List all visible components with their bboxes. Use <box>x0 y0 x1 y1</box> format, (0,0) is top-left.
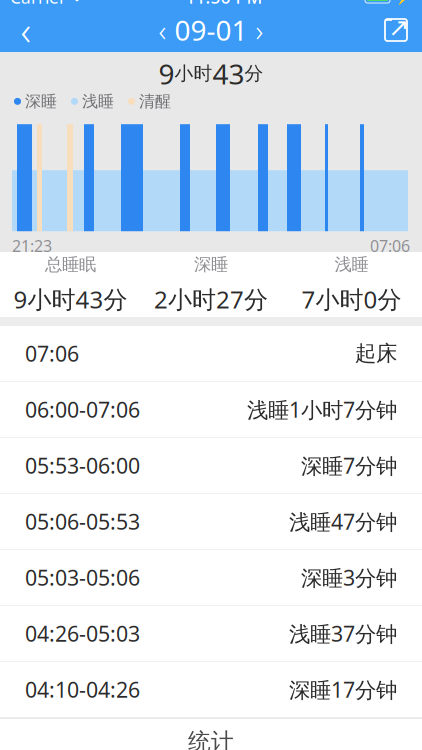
staticText: 统计 <box>188 727 234 750</box>
staticText: 11:56 PM <box>185 0 262 8</box>
staticText: 04:26-05:03 <box>25 619 140 648</box>
staticText: 小时 <box>174 62 212 85</box>
button[interactable]: Share <box>370 8 422 52</box>
staticText: 06:00-07:06 <box>25 395 140 424</box>
staticText: ⚡ <box>395 0 412 5</box>
button[interactable]: 06:00-07:06 <box>0 382 422 438</box>
staticText: 2小时27分 <box>154 283 268 315</box>
staticText: 43 <box>212 55 244 92</box>
button[interactable]: 05:06-05:53 <box>0 494 422 550</box>
staticText: 深睡 <box>194 254 228 275</box>
staticText: 05:53-06:00 <box>25 451 140 480</box>
staticText: Carrier <box>10 0 66 8</box>
staticText: ‹ <box>20 3 31 56</box>
button[interactable]: 04:26-05:03 <box>0 606 422 662</box>
staticText: 清醒 <box>139 91 171 111</box>
button[interactable]: 04:10-04:26 <box>0 662 422 718</box>
staticText: 9 <box>158 55 174 92</box>
staticText: 21:23 <box>12 235 52 256</box>
button[interactable]: 05:03-05:06 <box>0 550 422 606</box>
staticText: ‹ <box>158 10 166 49</box>
button[interactable]: 05:53-06:00 <box>0 438 422 494</box>
staticText: 07:06 <box>25 339 79 368</box>
staticText: 浅睡37分钟 <box>289 619 397 648</box>
staticText: ↗ <box>388 13 409 42</box>
staticText: 深睡7分钟 <box>301 451 397 480</box>
staticText: 07:06 <box>370 235 410 256</box>
staticText: 浅睡47分钟 <box>289 507 397 536</box>
staticText: 总睡眠 <box>45 254 96 275</box>
button[interactable]: ‹ <box>158 8 263 52</box>
staticText: 05:06-05:53 <box>25 507 140 536</box>
staticText: 深睡 <box>25 91 57 111</box>
staticText: 05:03-05:06 <box>25 563 140 592</box>
staticText: 浅睡1小时7分钟 <box>247 395 397 424</box>
staticText: 04:10-04:26 <box>25 675 140 704</box>
button[interactable]: 统计 <box>0 719 422 750</box>
staticText: 09-01 <box>174 11 247 49</box>
button[interactable]: 07:06 <box>0 326 422 382</box>
staticText: › <box>255 10 263 49</box>
staticText: 浅睡 <box>82 91 114 111</box>
button[interactable]: Back <box>0 8 52 52</box>
staticText: 起床 <box>355 340 397 367</box>
staticText: 深睡17分钟 <box>289 675 397 704</box>
staticText: 9小时43分 <box>13 283 127 315</box>
staticText: 分 <box>244 62 263 85</box>
staticText: 深睡3分钟 <box>301 563 397 592</box>
staticText: 7小时0分 <box>302 283 402 315</box>
staticText: 浅睡 <box>335 254 369 275</box>
